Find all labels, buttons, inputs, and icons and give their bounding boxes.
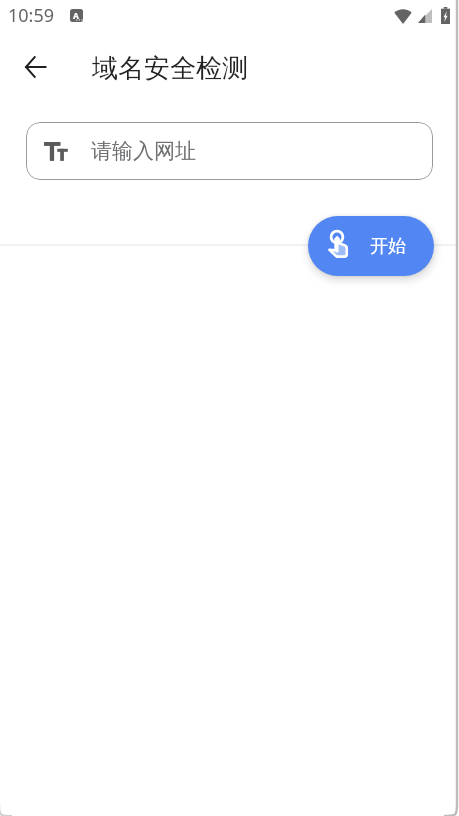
staticText: 开始 bbox=[370, 235, 406, 258]
staticText: 10:59 bbox=[8, 3, 55, 28]
staticText: A bbox=[73, 10, 79, 22]
staticText: 域名安全检测 bbox=[92, 52, 248, 85]
button[interactable]: 开始 bbox=[308, 216, 434, 276]
button[interactable]: 请输入网址 bbox=[26, 122, 433, 180]
button[interactable]: Back bbox=[11, 43, 59, 91]
staticText: 请输入网址 bbox=[91, 138, 196, 164]
